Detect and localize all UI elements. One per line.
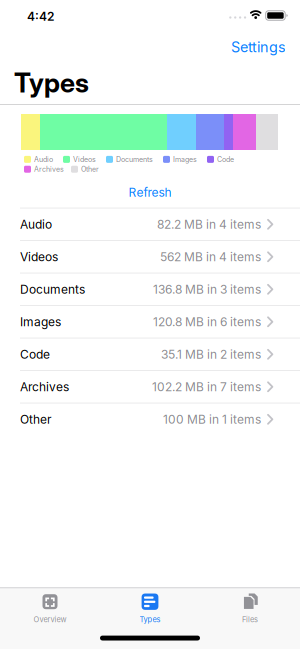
staticText: Other [20, 412, 52, 426]
button[interactable]: Other [0, 403, 300, 435]
staticText: Documents [20, 282, 85, 296]
staticText: Images [20, 315, 61, 329]
button[interactable]: Files [200, 594, 300, 624]
staticText: 102.2 MB in 7 items [152, 380, 261, 394]
staticText: 120.8 MB in 6 items [153, 315, 261, 329]
staticText: Images [173, 155, 197, 163]
staticText: 4:42 [27, 9, 54, 23]
staticText: 136.8 MB in 3 items [153, 282, 261, 296]
staticText: Files [242, 615, 258, 624]
button[interactable]: Audio [0, 208, 300, 240]
staticText: Videos [73, 155, 96, 163]
staticText: 82.2 MB in 4 items [157, 217, 261, 231]
staticText: Audio [20, 217, 52, 231]
button[interactable]: Refresh [128, 185, 171, 199]
button[interactable]: Code [0, 338, 300, 370]
staticText: Types [14, 67, 89, 98]
staticText: Settings [231, 38, 286, 55]
staticText: Code [217, 155, 234, 163]
staticText: Other [81, 165, 99, 173]
button[interactable]: Types [100, 594, 200, 624]
button[interactable]: Images [0, 306, 300, 338]
button[interactable]: Archives [0, 371, 300, 403]
staticText: Audio [34, 155, 53, 163]
button[interactable]: Videos [0, 241, 300, 273]
staticText: 562 MB in 4 items [160, 250, 261, 264]
staticText: Archives [20, 380, 69, 394]
staticText: Videos [20, 250, 58, 264]
button[interactable]: Overview [0, 594, 100, 624]
staticText: 100 MB in 1 items [163, 412, 261, 426]
staticText: Refresh [128, 185, 171, 199]
staticText: Code [20, 347, 50, 361]
staticText: Archives [34, 165, 64, 173]
button[interactable]: Settings [231, 38, 286, 55]
staticText: Overview [33, 615, 66, 624]
button[interactable]: Documents [0, 273, 300, 305]
staticText: 35.1 MB in 2 items [161, 347, 261, 361]
staticText: Types [139, 615, 160, 624]
staticText: Documents [116, 155, 153, 163]
